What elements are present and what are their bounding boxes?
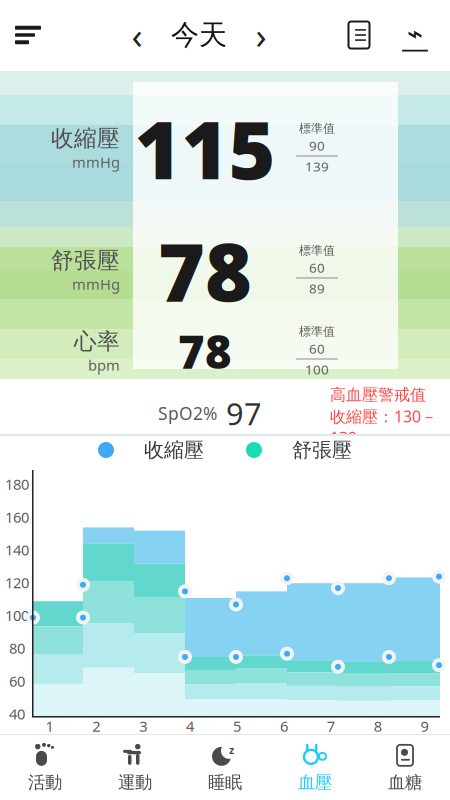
- button[interactable]: 今天: [171, 13, 227, 57]
- staticText: 140: [5, 540, 29, 559]
- button[interactable]: Menu: [0, 0, 56, 71]
- staticText: 60: [309, 259, 325, 276]
- staticText: 活動: [28, 772, 62, 793]
- staticText: 運動: [118, 772, 152, 793]
- staticText: 78: [158, 217, 252, 323]
- staticText: 2: [92, 716, 100, 736]
- staticText: 標準值: [299, 121, 335, 136]
- staticText: 標準值: [299, 243, 335, 258]
- button[interactable]: z: [180, 736, 270, 800]
- staticText: ‹: [131, 11, 142, 59]
- staticText: 40: [9, 704, 25, 723]
- staticText: 收縮壓：130－139: [330, 406, 437, 448]
- staticText: 60: [9, 671, 25, 691]
- staticText: 血糖: [388, 772, 422, 793]
- button[interactable]: 血壓: [270, 736, 360, 800]
- staticText: bpm: [88, 355, 120, 375]
- button[interactable]: 運動: [90, 736, 180, 800]
- staticText: 心率: [74, 327, 120, 355]
- staticText: ›: [255, 11, 266, 59]
- staticText: 血壓: [298, 772, 332, 793]
- staticText: 3: [139, 716, 147, 736]
- staticText: 100: [305, 360, 329, 378]
- button[interactable]: Previous day: [123, 13, 151, 57]
- staticText: 標準值: [299, 324, 335, 339]
- staticText: 97: [226, 393, 262, 434]
- staticText: 收縮壓: [51, 124, 120, 152]
- staticText: 60: [309, 340, 325, 357]
- staticText: 睡眠: [208, 772, 242, 793]
- button[interactable]: Trends: [398, 13, 432, 57]
- staticText: 高血壓警戒值: [330, 385, 426, 405]
- staticText: 8: [374, 716, 382, 736]
- staticText: z: [229, 743, 234, 757]
- button[interactable]: 血糖: [360, 736, 450, 800]
- staticText: 7: [327, 716, 335, 736]
- staticText: 舒張壓: [292, 438, 352, 462]
- staticText: 收縮壓: [144, 438, 204, 462]
- staticText: 舒張壓：80－89: [330, 449, 446, 470]
- staticText: 4: [186, 716, 194, 736]
- staticText: 100: [5, 606, 29, 625]
- staticText: 9: [421, 716, 429, 736]
- button[interactable]: Records: [342, 13, 376, 57]
- staticText: mmHg: [72, 274, 120, 294]
- button[interactable]: 活動: [0, 736, 90, 800]
- staticText: 180: [5, 474, 29, 494]
- staticText: mmHg: [72, 152, 120, 172]
- staticText: 今天: [171, 18, 227, 52]
- staticText: 5: [233, 716, 241, 736]
- staticText: 115: [134, 95, 275, 201]
- staticText: SpO2%: [158, 402, 217, 425]
- staticText: 139: [305, 157, 329, 175]
- button[interactable]: Next day: [247, 13, 275, 57]
- staticText: 1: [45, 716, 53, 736]
- staticText: 78: [178, 321, 232, 381]
- staticText: 80: [9, 638, 25, 658]
- staticText: 89: [309, 279, 325, 297]
- staticText: ⌁: [407, 18, 423, 49]
- staticText: 6: [280, 716, 288, 736]
- staticText: 120: [5, 573, 29, 592]
- staticText: 90: [309, 137, 325, 154]
- staticText: 舒張壓: [51, 246, 120, 274]
- staticText: 160: [5, 507, 29, 527]
